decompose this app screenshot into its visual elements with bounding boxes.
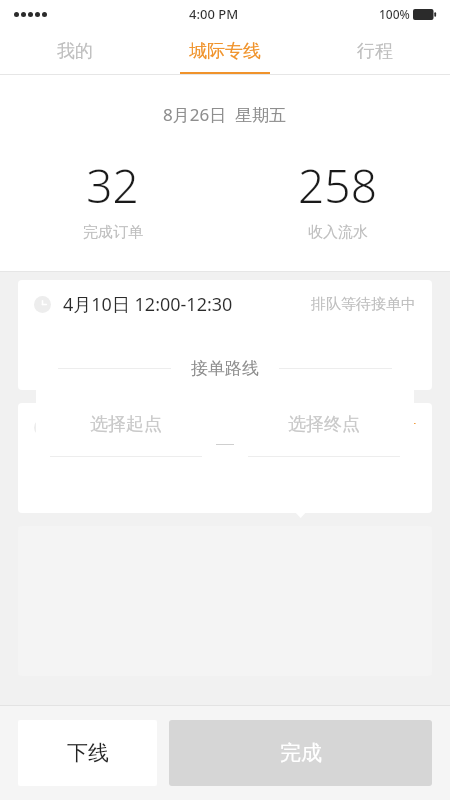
- staticText: 行程: [357, 40, 393, 63]
- button[interactable]: 我的: [0, 28, 150, 75]
- staticText: 完成: [280, 740, 322, 766]
- staticText: 4月10日 12:00-12:30: [63, 415, 233, 440]
- staticText: 排队等待接单中: [311, 295, 416, 314]
- button[interactable]: 4月10日 12:00-12:30: [18, 403, 432, 513]
- button[interactable]: 完成: [169, 720, 432, 786]
- staticText: 4:00 PM: [189, 5, 239, 23]
- staticText: 选择起点: [90, 413, 162, 436]
- staticText: 接单路线: [191, 358, 259, 379]
- button[interactable]: 选择终点: [248, 413, 400, 436]
- staticText: 下线: [67, 740, 109, 766]
- staticText: 100%: [379, 6, 410, 22]
- staticText: 258: [298, 154, 377, 217]
- staticText: 32: [86, 154, 139, 217]
- staticText: 我的: [57, 40, 93, 63]
- staticText: 4月10日 12:00-12:30: [63, 292, 233, 317]
- staticText: 石家庄市: [60, 355, 128, 376]
- button[interactable]: 行程: [300, 28, 450, 75]
- button[interactable]: 选择起点: [50, 413, 202, 436]
- staticText: 收入流水: [308, 223, 368, 242]
- staticText: 已超时: [371, 418, 416, 437]
- button[interactable]: 4月10日 12:00-12:30: [18, 280, 432, 390]
- button[interactable]: 城际专线: [150, 28, 300, 75]
- staticText: 完成订单: [83, 223, 143, 242]
- button[interactable]: 下线: [18, 720, 157, 786]
- staticText: 城际专线: [189, 40, 261, 63]
- staticText: 选择终点: [288, 413, 360, 436]
- staticText: 北京市: [60, 450, 111, 471]
- staticText: 8月26日 星期五: [163, 103, 287, 126]
